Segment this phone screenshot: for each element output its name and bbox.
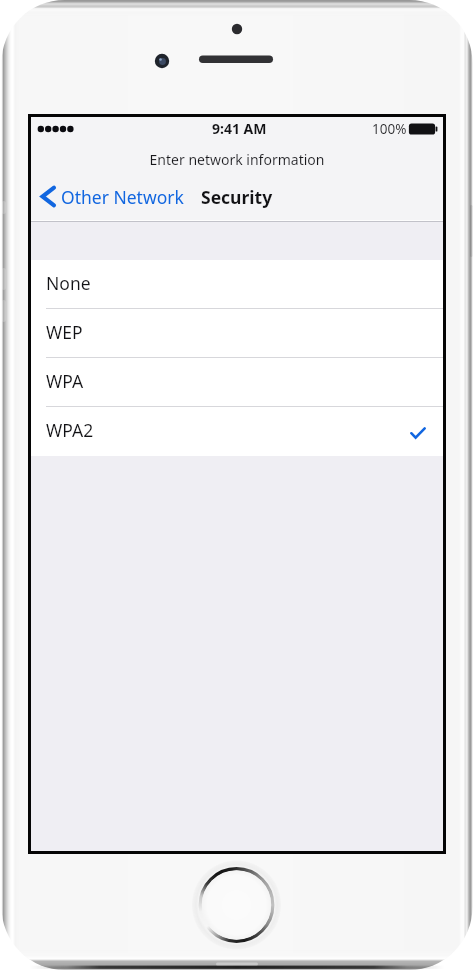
button[interactable]: Other Network bbox=[34, 180, 190, 213]
staticText: 9:41 AM bbox=[212, 119, 267, 138]
button[interactable]: WEP bbox=[31, 309, 443, 358]
staticText: Enter network information bbox=[31, 150, 443, 169]
staticText: WPA2 bbox=[46, 418, 94, 442]
button[interactable]: WPA bbox=[31, 358, 443, 407]
staticText: None bbox=[46, 271, 91, 295]
staticText: 100% bbox=[372, 120, 407, 138]
staticText: Security bbox=[201, 185, 273, 209]
staticText: WEP bbox=[46, 320, 83, 344]
button[interactable]: None bbox=[31, 260, 443, 309]
other: Selected, WPA2 bbox=[410, 427, 426, 439]
staticText: WPA bbox=[46, 369, 84, 393]
button[interactable]: WPA2 bbox=[31, 407, 443, 456]
staticText: Other Network bbox=[61, 185, 184, 209]
